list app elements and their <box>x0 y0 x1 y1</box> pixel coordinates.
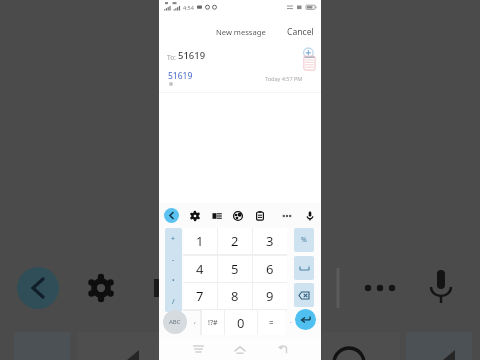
button[interactable]: Settings <box>186 207 203 224</box>
button[interactable]: 6 <box>253 256 287 282</box>
button[interactable]: Home <box>229 338 251 360</box>
staticText: • <box>172 276 175 286</box>
staticText: = <box>269 317 274 328</box>
button[interactable]: Collapse keyboard <box>164 208 179 223</box>
button[interactable]: Clipboard <box>251 207 268 224</box>
staticText: Today 4:57 PM <box>265 75 303 82</box>
button[interactable]: Themes <box>229 207 246 224</box>
staticText: 0 <box>237 314 245 332</box>
staticText: ABC <box>169 318 181 326</box>
button[interactable]: Translate <box>208 207 225 224</box>
staticText: Cancel <box>287 26 314 38</box>
button[interactable]: 7 <box>183 283 217 309</box>
button[interactable]: Recent apps <box>187 338 209 360</box>
staticText: - <box>172 255 175 265</box>
button[interactable]: 0 <box>225 310 257 335</box>
button[interactable]: = <box>258 310 285 335</box>
staticText: 2 <box>231 232 239 250</box>
button[interactable]: 9 <box>253 283 287 309</box>
button[interactable]: 1 <box>183 228 217 254</box>
button[interactable]: Voice input <box>301 207 318 224</box>
button[interactable]: % <box>294 228 314 252</box>
button[interactable]: Cancel <box>287 24 314 39</box>
staticText: 6 <box>266 260 274 278</box>
staticText: . <box>290 316 292 326</box>
button[interactable]: ABC <box>163 310 187 334</box>
staticText: 51619 <box>178 49 206 62</box>
staticText: 4:54 <box>183 4 194 11</box>
staticText: 5 <box>231 260 239 278</box>
staticText: + <box>171 234 176 244</box>
button[interactable]: Space <box>294 256 314 280</box>
staticText: 1 <box>196 232 204 250</box>
button[interactable]: New message <box>216 24 266 39</box>
button[interactable]: 2 <box>218 228 252 254</box>
staticText: 8 <box>231 287 239 305</box>
button[interactable]: Backspace <box>294 283 314 307</box>
button[interactable]: + <box>165 228 182 249</box>
staticText: / <box>172 297 175 307</box>
staticText: 51619 <box>168 70 193 82</box>
staticText: % <box>301 235 307 245</box>
staticText: !?# <box>208 318 218 328</box>
button[interactable]: 8 <box>218 283 252 309</box>
staticText: New message <box>216 27 266 37</box>
staticText: 7 <box>196 287 204 305</box>
button[interactable]: 5 <box>218 256 252 282</box>
button[interactable]: - <box>165 249 182 270</box>
button[interactable]: Back <box>272 338 294 360</box>
staticText: To: <box>167 53 176 62</box>
button[interactable]: Add recipient <box>301 48 317 72</box>
staticText: 4 <box>196 260 204 278</box>
button[interactable]: !?# <box>202 310 224 335</box>
button[interactable]: 4 <box>183 256 217 282</box>
staticText: 9 <box>266 287 274 305</box>
button[interactable]: • <box>165 270 182 291</box>
button[interactable]: 3 <box>253 228 287 254</box>
staticText: 3 <box>266 232 274 250</box>
staticText: , <box>194 316 196 326</box>
button[interactable]: Enter <box>295 309 316 330</box>
button[interactable]: 51619 <box>159 68 321 88</box>
button[interactable]: More options <box>278 207 295 224</box>
button[interactable]: / <box>165 291 182 312</box>
